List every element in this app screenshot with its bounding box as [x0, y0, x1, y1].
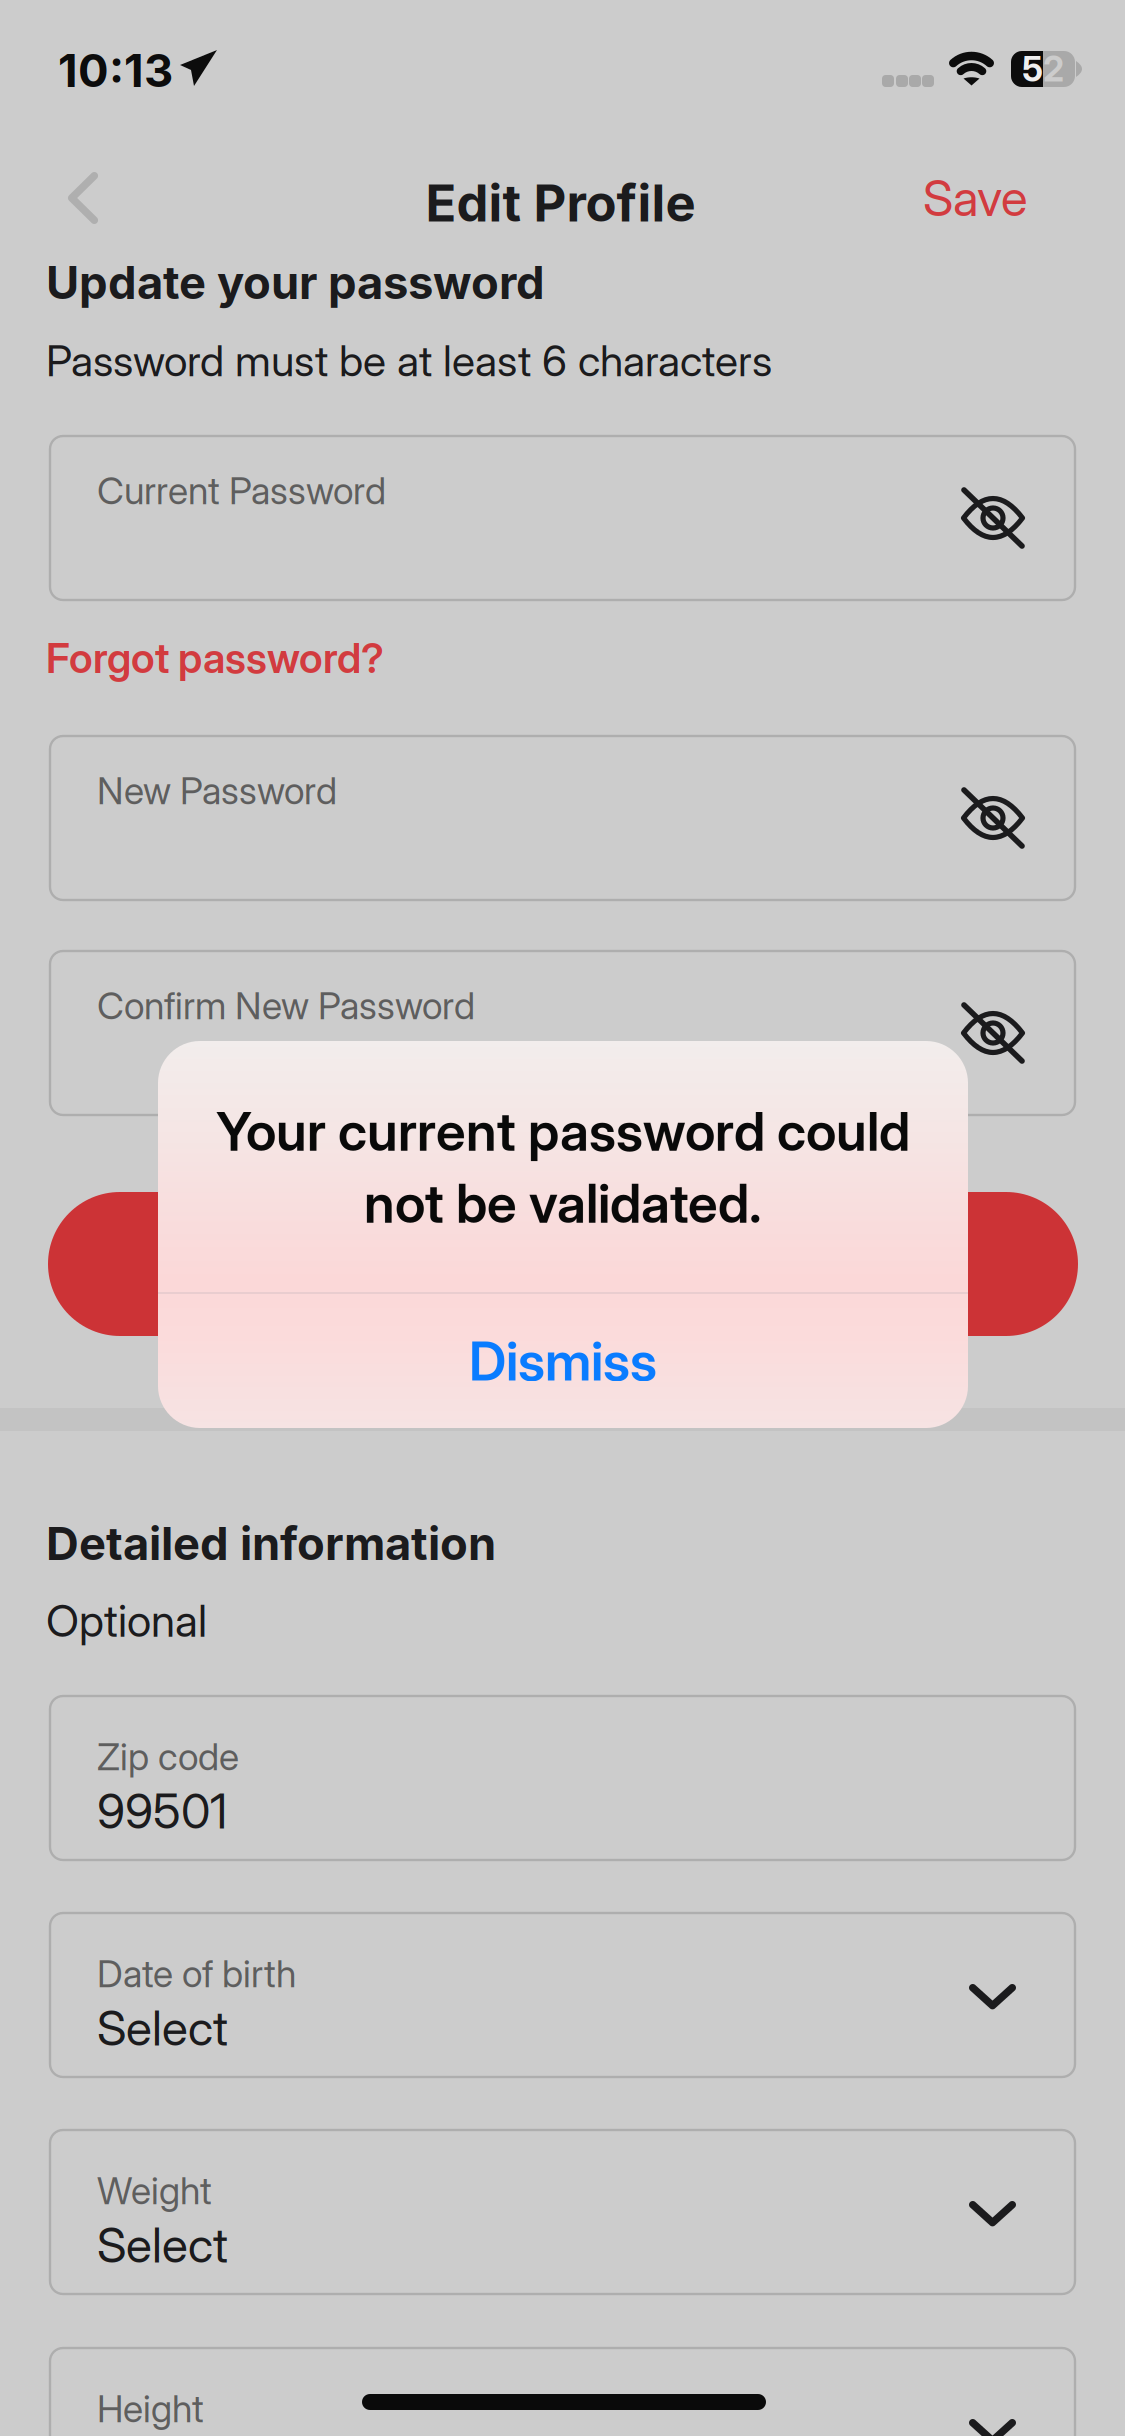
staticText: Password must be at least 6 characters	[46, 335, 772, 387]
staticText: New Password	[97, 768, 337, 813]
staticText: Current Password	[97, 468, 386, 513]
staticText: Date of birth	[97, 1951, 296, 1996]
staticText: 52	[1022, 48, 1064, 90]
staticText: Optional	[46, 1594, 207, 1647]
button[interactable]: Show Current Password	[933, 436, 1053, 600]
staticText: Save	[923, 168, 1027, 228]
button[interactable]: Zip code	[50, 1696, 1075, 1860]
staticText: Dismiss	[469, 1329, 657, 1393]
staticText: Edit Profile	[425, 172, 695, 234]
button[interactable]: Height	[50, 2348, 1075, 2436]
button[interactable]: Show New Password	[933, 736, 1053, 900]
staticText: Weight	[97, 2168, 212, 2213]
button[interactable]: Show Confirm New Password	[933, 951, 1053, 1115]
button[interactable]: Date of birth	[50, 1913, 1075, 2077]
button[interactable]: Weight	[50, 2130, 1075, 2294]
staticText: Confirm New Password	[97, 983, 475, 1028]
button[interactable]: Save	[890, 150, 1060, 246]
button[interactable]: Back	[33, 150, 133, 246]
staticText: Select	[97, 1999, 228, 2057]
staticText: 99501	[97, 1782, 227, 1840]
staticText: Update your password	[46, 255, 545, 310]
staticText: Your current password could	[216, 1099, 910, 1163]
staticText: 10:13	[58, 43, 173, 98]
staticText: Zip code	[97, 1734, 239, 1779]
staticText: Detailed information	[46, 1516, 496, 1571]
button[interactable]: Dismiss	[158, 1294, 968, 1428]
staticText: 52	[1022, 48, 1064, 90]
staticText: Height	[97, 2386, 204, 2431]
button[interactable]: Forgot password?	[46, 633, 384, 683]
staticText: Select	[97, 2216, 228, 2274]
staticText: Forgot password?	[46, 633, 384, 683]
staticText: not be validated.	[364, 1171, 762, 1235]
button[interactable]: Change password	[48, 1192, 1078, 1336]
